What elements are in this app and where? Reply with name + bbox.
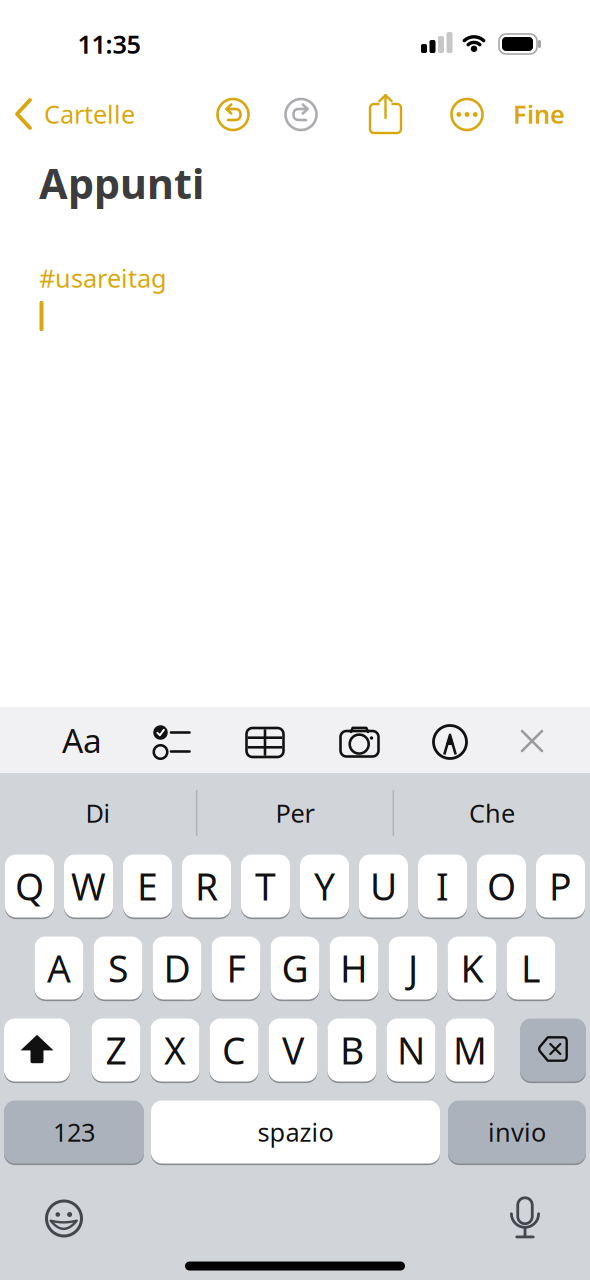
button[interactable]: Share (368, 93, 402, 135)
button[interactable]: G (270, 935, 319, 1000)
staticText: F (226, 943, 245, 993)
button[interactable]: X (150, 1017, 199, 1082)
staticText: E (137, 861, 158, 911)
staticText: C (222, 1025, 246, 1075)
button[interactable]: Camera (340, 726, 378, 756)
button[interactable]: Markup (433, 725, 466, 758)
staticText: Y (314, 861, 335, 911)
button[interactable]: A (34, 935, 83, 1000)
button[interactable]: Shift (4, 1017, 70, 1082)
button[interactable]: Emoji (45, 1199, 83, 1237)
button[interactable]: W (64, 853, 113, 918)
button[interactable]: Z (91, 1017, 140, 1082)
button[interactable]: B (327, 1017, 376, 1082)
staticText: Che (469, 796, 515, 830)
button[interactable]: U (359, 853, 408, 918)
button[interactable]: N (386, 1017, 435, 1082)
button[interactable]: Table (246, 728, 283, 757)
staticText: M (453, 1025, 487, 1075)
button[interactable]: R (182, 853, 231, 918)
button[interactable]: Per (200, 782, 390, 844)
staticText: Q (15, 861, 44, 911)
staticText: N (397, 1025, 425, 1075)
button[interactable]: L (506, 935, 555, 1000)
button[interactable]: Undo (216, 97, 250, 131)
button[interactable]: 123 (4, 1099, 144, 1164)
staticText: spazio (257, 1115, 333, 1149)
staticText: Z (105, 1025, 126, 1075)
staticText: G (281, 943, 308, 993)
staticText: Di (85, 796, 110, 830)
staticText: Aa (62, 718, 102, 762)
button[interactable]: More (450, 97, 484, 131)
staticText: H (340, 943, 368, 993)
staticText: #usareitag (39, 261, 167, 295)
button[interactable]: I (418, 853, 467, 918)
staticText: D (163, 943, 190, 993)
button[interactable]: T (241, 853, 290, 918)
button[interactable]: Y (300, 853, 349, 918)
staticText: Fine (513, 97, 565, 131)
button[interactable]: E (123, 853, 172, 918)
button[interactable]: O (477, 853, 526, 918)
button[interactable]: invio (448, 1099, 586, 1164)
staticText: I (436, 861, 449, 911)
button[interactable]: Redo (284, 97, 318, 131)
staticText: Cartelle (44, 97, 135, 131)
staticText: J (408, 943, 418, 993)
staticText: T (255, 861, 276, 911)
staticText: R (195, 861, 218, 911)
staticText: O (487, 861, 516, 911)
button[interactable]: Dismiss keyboard (521, 730, 543, 752)
staticText: Appunti (39, 156, 204, 210)
staticText: L (521, 943, 541, 993)
button[interactable]: C (209, 1017, 258, 1082)
button[interactable]: Back (14, 92, 184, 136)
staticText: Per (275, 796, 314, 830)
staticText: K (460, 943, 483, 993)
staticText: A (47, 943, 71, 993)
staticText: B (340, 1025, 364, 1075)
button[interactable]: Che (397, 782, 587, 844)
button[interactable]: S (93, 935, 142, 1000)
button[interactable]: H (329, 935, 378, 1000)
button[interactable]: Fine (513, 97, 565, 131)
button[interactable]: F (211, 935, 260, 1000)
staticText: X (164, 1025, 186, 1075)
staticText: 123 (53, 1115, 95, 1149)
button[interactable]: Di (3, 782, 193, 844)
button[interactable]: Delete (520, 1017, 586, 1082)
button[interactable]: P (536, 853, 585, 918)
staticText: W (71, 861, 106, 911)
button[interactable]: Dictation (510, 1198, 540, 1239)
button[interactable]: J (388, 935, 437, 1000)
staticText: invio (488, 1115, 546, 1149)
button[interactable]: K (447, 935, 496, 1000)
button[interactable]: V (268, 1017, 317, 1082)
button[interactable]: M (445, 1017, 494, 1082)
button[interactable]: spazio (151, 1099, 440, 1164)
button[interactable]: Q (5, 853, 54, 918)
button[interactable]: Checklist (153, 725, 191, 759)
staticText: U (370, 861, 397, 911)
staticText: 11:35 (77, 27, 140, 61)
button[interactable]: D (152, 935, 201, 1000)
button[interactable]: Format (54, 712, 110, 768)
staticText: P (549, 861, 572, 911)
staticText: S (108, 943, 128, 993)
staticText: V (282, 1025, 304, 1075)
